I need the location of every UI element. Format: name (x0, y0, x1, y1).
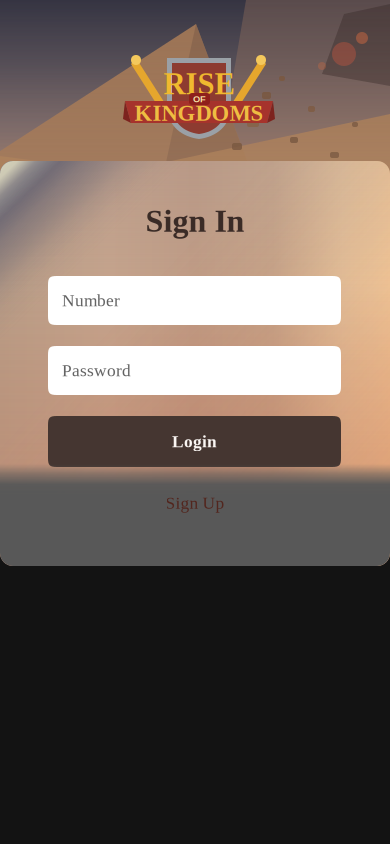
button[interactable]: Login (48, 416, 341, 467)
button[interactable]: Password (48, 346, 341, 395)
staticText: Number (62, 291, 120, 310)
staticText: KINGDOMS (134, 100, 263, 125)
staticText: Sign In (145, 203, 244, 239)
staticText: OF (193, 94, 206, 104)
staticText: Sign Up (165, 493, 224, 513)
staticText: Login (172, 432, 217, 451)
button[interactable]: Sign Up (125, 489, 265, 517)
staticText: RISE (163, 67, 234, 101)
staticText: Password (62, 361, 131, 380)
button[interactable]: Number (48, 276, 341, 325)
